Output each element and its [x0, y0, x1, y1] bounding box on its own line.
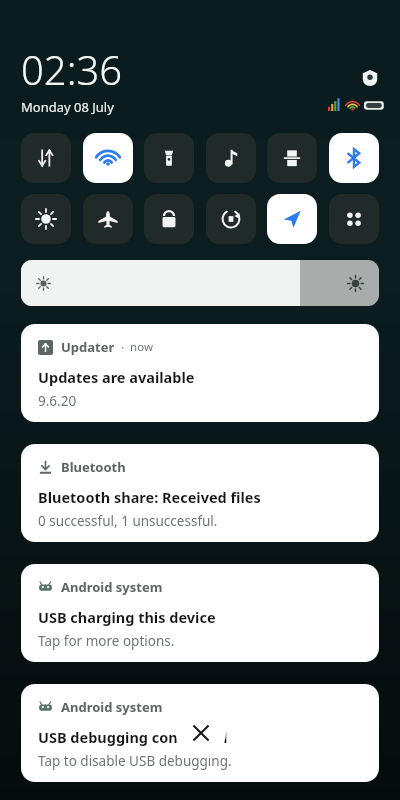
staticText: 0 successful, 1 unsuccessful. — [38, 512, 218, 530]
staticText: Monday 08 July — [21, 98, 114, 116]
staticText: USB debugging connected — [38, 727, 228, 747]
button[interactable]: Android system — [21, 684, 379, 782]
staticText: Bluetooth share: Received files — [38, 487, 261, 507]
button[interactable]: Bluetooth — [21, 444, 379, 542]
button[interactable]: Android system — [21, 564, 379, 662]
staticText: USB charging this device — [38, 607, 216, 627]
button[interactable]: Auto rotate — [206, 194, 256, 244]
button[interactable]: Wi-Fi — [83, 133, 133, 183]
staticText: Tap to disable USB debugging. — [38, 752, 232, 770]
button[interactable]: Mobile data — [21, 133, 71, 183]
staticText: Updater — [61, 338, 115, 356]
button[interactable]: Clear all notifications — [176, 708, 226, 758]
button[interactable]: More tiles — [329, 194, 379, 244]
button[interactable]: Brightness — [21, 260, 379, 306]
button[interactable]: Updater — [21, 324, 379, 422]
button[interactable]: Lock — [144, 194, 194, 244]
staticText: 02:36 — [21, 42, 123, 96]
staticText: · now — [115, 339, 153, 355]
button[interactable]: Flashlight — [144, 133, 194, 183]
button[interactable]: Location — [267, 194, 317, 244]
staticText: Tap for more options. — [38, 632, 175, 650]
button[interactable]: Brightness — [21, 194, 71, 244]
button[interactable]: Bluetooth — [329, 133, 379, 183]
button[interactable]: Music — [206, 133, 256, 183]
button[interactable]: Split screen — [267, 133, 317, 183]
staticText: Android system — [61, 698, 163, 716]
staticText: 9.6.20 — [38, 392, 77, 410]
staticText: Android system — [61, 578, 163, 596]
staticText: Bluetooth — [61, 458, 126, 476]
staticText: Updates are available — [38, 367, 195, 387]
button[interactable]: Airplane mode — [83, 194, 133, 244]
